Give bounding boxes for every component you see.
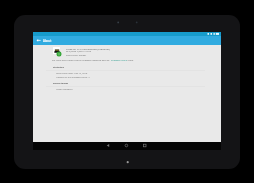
- staticText: Store: [127, 59, 134, 62]
- staticText: v2.0 (build 7) Dec 31 2018: [66, 50, 92, 53]
- staticText: Wake on LAN Commander (Premium): [66, 47, 110, 50]
- staticText: Adrian Mihaescu: [56, 88, 73, 91]
- staticText: For tools like a open source software ad…: [52, 59, 111, 62]
- button[interactable]: Software Stack: [111, 59, 127, 62]
- staticText: xilinx/Cmdr Toolbar: [66, 54, 87, 57]
- staticText: Software Stack: [111, 59, 127, 62]
- staticText: About: [43, 39, 52, 43]
- staticText: Number of this package count: 4: [56, 76, 90, 79]
- staticText: Special thanks: [53, 82, 69, 85]
- staticText: Statistics: [53, 65, 64, 68]
- staticText: Total install date: Nov 14, 2018: [56, 72, 88, 75]
- button[interactable]: Navigate up: [34, 37, 42, 45]
